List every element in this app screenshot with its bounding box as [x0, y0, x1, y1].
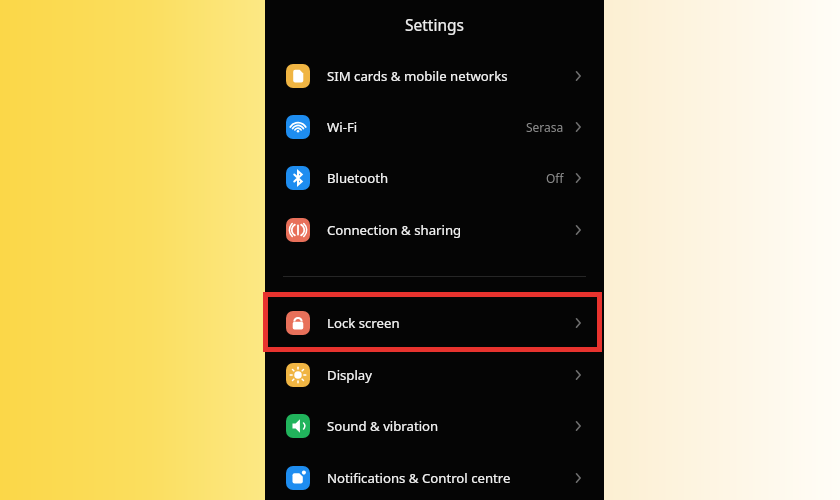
button[interactable]: Notifications & Control centre	[265, 454, 604, 500]
button[interactable]: Sound & vibration	[265, 402, 604, 450]
staticText: Serasa	[526, 119, 564, 135]
other: Lock screen highlighted	[263, 292, 602, 352]
button[interactable]: Bluetooth	[265, 154, 604, 202]
button[interactable]: SIM cards & mobile networks	[265, 52, 604, 100]
button[interactable]: Connection & sharing	[265, 206, 604, 254]
staticText: SIM cards & mobile networks	[327, 67, 508, 85]
staticText: Display	[327, 366, 372, 384]
staticText: Bluetooth	[327, 169, 389, 187]
button[interactable]: Lock screen	[265, 299, 604, 347]
staticText: Settings	[405, 14, 464, 35]
button[interactable]: Display	[265, 351, 604, 399]
staticText: Notifications & Control centre	[327, 469, 511, 487]
staticText: Wi-Fi	[327, 118, 358, 136]
staticText: Sound & vibration	[327, 417, 439, 435]
staticText: Lock screen	[327, 314, 400, 332]
staticText: Off	[546, 170, 564, 186]
button[interactable]: Wi-Fi	[265, 103, 604, 151]
staticText: Connection & sharing	[327, 221, 462, 239]
